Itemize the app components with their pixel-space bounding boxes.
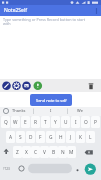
staticText: D [29,134,33,141]
staticText: O [84,119,88,126]
staticText: F [39,134,42,141]
staticText: P [94,119,97,126]
staticText: I [50,108,52,113]
staticText: We [77,108,83,113]
staticText: Note2Self [4,7,27,14]
staticText: A [9,134,13,141]
staticText: V [43,149,46,156]
staticText: Q [4,119,8,126]
staticText: G [49,134,53,141]
staticText: S [19,134,22,141]
staticText: Type something or Press Record button to… [3,17,85,22]
staticText: E [24,119,27,126]
staticText: N [61,149,65,156]
staticText: Send note to self [36,98,67,103]
staticText: T [44,119,47,126]
staticText: R [34,119,37,126]
staticText: with [3,21,11,26]
staticText: C [34,149,38,156]
staticText: L [89,134,92,141]
staticText: U [64,119,68,126]
staticText: Thanks [12,108,26,113]
staticText: I [75,119,77,126]
staticText: X [25,149,28,156]
staticText: M [69,149,74,156]
staticText: H [59,134,63,141]
staticText: Y [54,119,57,126]
staticText: K [79,134,82,141]
staticText: W [13,119,18,126]
staticText: B [52,149,56,156]
staticText: Z [16,149,19,156]
staticText: ?123 [3,167,10,171]
staticText: J [70,134,72,141]
